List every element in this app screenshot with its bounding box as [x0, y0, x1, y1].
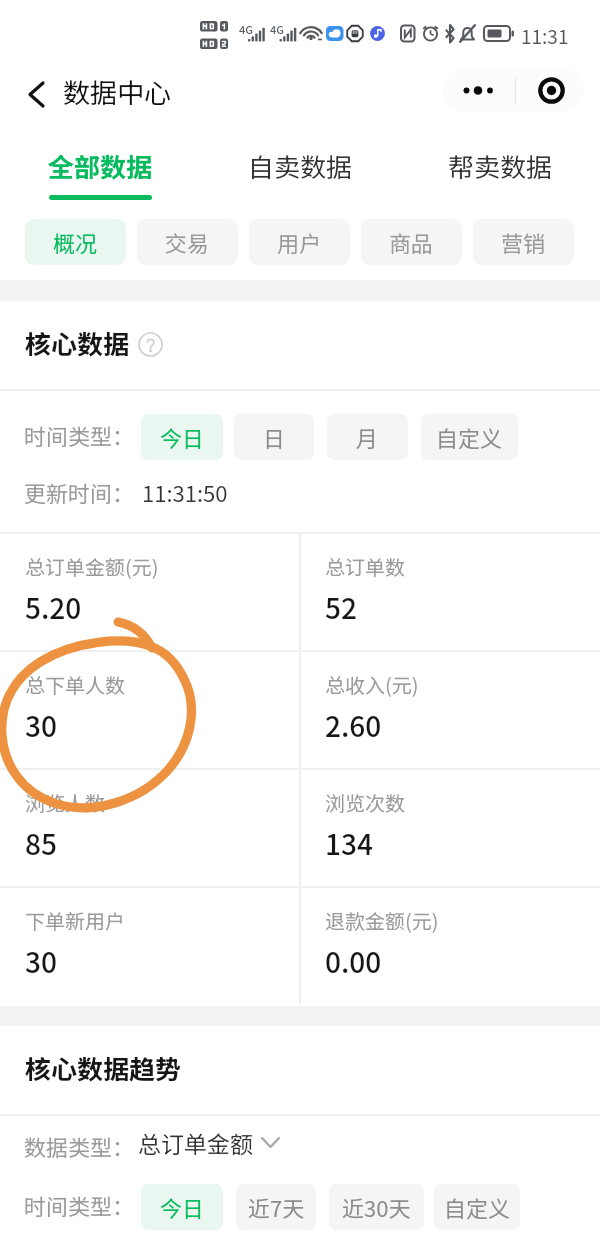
staticText: 30: [25, 705, 57, 746]
staticText: 85: [25, 823, 57, 864]
button[interactable]: 用户: [249, 219, 350, 265]
button[interactable]: 退款金额(元): [300, 886, 600, 1004]
staticText: 更新时间：: [24, 476, 135, 508]
button[interactable]: 总收入(元): [300, 650, 600, 768]
button[interactable]: 自定义: [421, 414, 518, 460]
staticText: 4G: [239, 21, 253, 37]
button[interactable]: 浏览人数: [0, 768, 300, 886]
staticText: 总订单金额(元): [25, 552, 159, 581]
button[interactable]: 自卖数据: [200, 137, 400, 207]
button[interactable]: 总订单金额(元): [0, 532, 300, 650]
staticText: 今日: [160, 421, 205, 453]
staticText: 商品: [389, 226, 434, 258]
staticText: 总收入(元): [325, 670, 419, 699]
staticText: 全部数据: [48, 147, 153, 185]
staticText: 自卖数据: [248, 147, 353, 185]
staticText: 交易: [165, 226, 210, 258]
staticText: 月: [356, 421, 379, 453]
staticText: 2.60: [325, 705, 382, 746]
button[interactable]: More options and close mini program: [442, 68, 584, 113]
button[interactable]: 商品: [361, 219, 462, 265]
staticText: 时间类型：: [24, 419, 135, 451]
staticText: 核心数据趋势: [25, 1049, 182, 1087]
button[interactable]: 今日: [141, 1184, 223, 1230]
staticText: 11:31:50: [142, 476, 228, 508]
staticText: 自定义: [444, 1191, 511, 1223]
staticText: 时间类型：: [24, 1189, 135, 1221]
button[interactable]: 今日: [141, 414, 223, 460]
staticText: 近7天: [248, 1191, 305, 1223]
staticText: 30: [25, 941, 57, 982]
staticText: 浏览次数: [325, 788, 405, 817]
button[interactable]: 月: [327, 414, 408, 460]
staticText: 0.00: [325, 941, 382, 982]
staticText: 退款金额(元): [325, 906, 439, 935]
button[interactable]: 总订单金额: [138, 1126, 280, 1158]
button[interactable]: 交易: [137, 219, 238, 265]
button[interactable]: 近30天: [329, 1184, 424, 1230]
staticText: 自定义: [436, 421, 503, 453]
staticText: 5.20: [25, 587, 82, 628]
staticText: 134: [325, 823, 373, 864]
button[interactable]: Back: [12, 57, 60, 131]
staticText: 总订单金额: [138, 1126, 253, 1158]
staticText: 营销: [501, 226, 546, 258]
button[interactable]: Help: [138, 332, 163, 357]
button[interactable]: 总下单人数: [0, 650, 300, 768]
staticText: 近30天: [342, 1191, 411, 1223]
staticText: 总订单数: [325, 552, 405, 581]
staticText: 今日: [160, 1191, 205, 1223]
staticText: 用户: [277, 226, 322, 258]
button[interactable]: 下单新用户: [0, 886, 300, 1004]
button[interactable]: 自定义: [434, 1184, 520, 1230]
staticText: 浏览人数: [25, 788, 105, 817]
button[interactable]: 营销: [473, 219, 574, 265]
staticText: 日: [263, 421, 286, 453]
button[interactable]: 近7天: [236, 1184, 316, 1230]
staticText: 核心数据: [25, 324, 130, 362]
button[interactable]: 浏览次数: [300, 768, 600, 886]
staticText: 4G: [270, 21, 284, 37]
staticText: 帮卖数据: [448, 147, 553, 185]
button[interactable]: 全部数据: [0, 137, 200, 207]
staticText: 数据中心: [63, 72, 171, 111]
button[interactable]: 概况: [25, 219, 126, 265]
staticText: 11:31: [521, 22, 569, 50]
staticText: 总下单人数: [25, 670, 125, 699]
staticText: 下单新用户: [25, 906, 125, 935]
button[interactable]: 总订单数: [300, 532, 600, 650]
button[interactable]: 日: [234, 414, 314, 460]
staticText: 数据类型：: [24, 1130, 135, 1162]
button[interactable]: 帮卖数据: [400, 137, 600, 207]
staticText: 52: [325, 587, 357, 628]
staticText: 概况: [53, 226, 98, 258]
